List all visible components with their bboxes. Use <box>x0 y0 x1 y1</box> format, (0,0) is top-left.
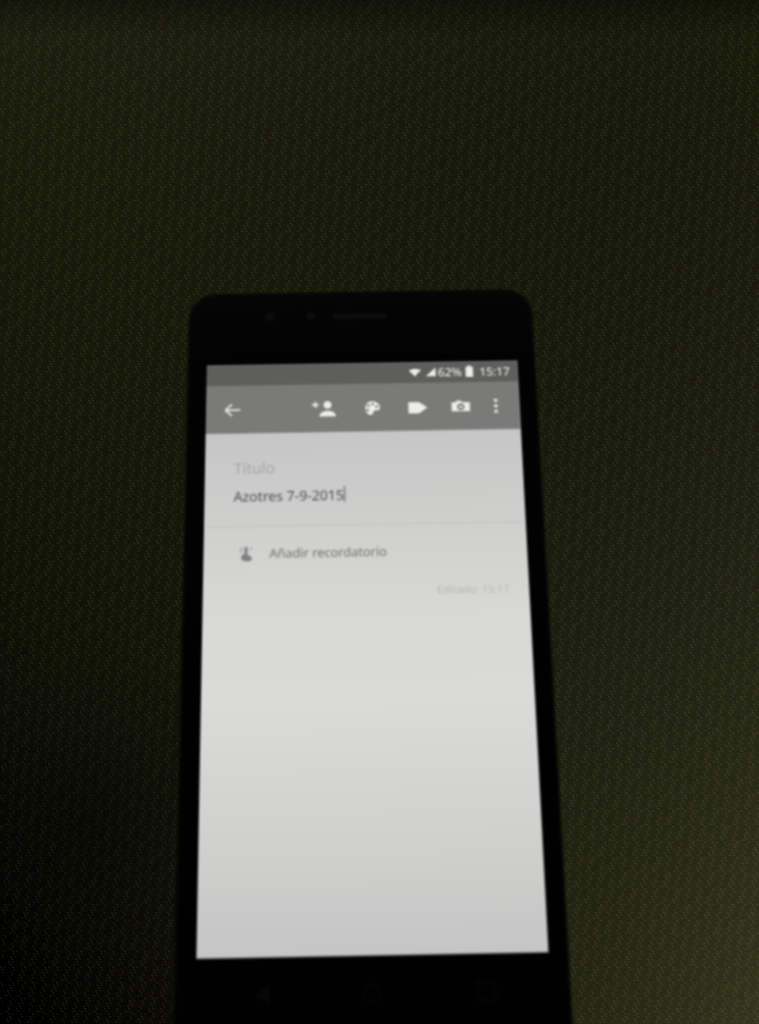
staticText: 62% <box>437 364 462 380</box>
button[interactable]: Camera <box>441 388 480 425</box>
button[interactable]: More options <box>476 388 516 424</box>
button[interactable]: Add collaborator <box>305 390 343 427</box>
staticText: Añadir recordatorio <box>269 542 387 562</box>
button[interactable]: Label <box>398 389 437 425</box>
button[interactable]: Change colour <box>352 390 391 426</box>
staticText: Editado: 15:17 <box>203 581 510 600</box>
staticText: 15:17 <box>479 363 511 379</box>
button[interactable]: Añadir recordatorio <box>203 530 528 573</box>
staticText: Título <box>234 457 275 478</box>
button[interactable]: Back <box>212 392 251 428</box>
staticText: Azotres 7-9-2015 <box>233 485 344 505</box>
